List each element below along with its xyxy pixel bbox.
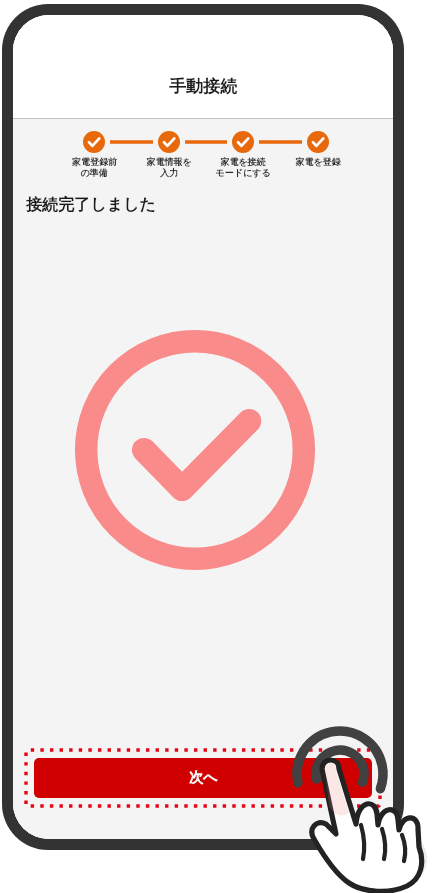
button[interactable]: 次へ [34,758,372,798]
staticText: 手動接続 [169,76,237,97]
staticText: 家電情報を [146,156,192,167]
staticText: 家電を接続 [220,156,266,167]
staticText: 入力 [160,167,178,178]
staticText: 家電登録前 [72,156,117,167]
staticText: の準備 [80,167,108,178]
staticText: 次へ [189,769,218,787]
other: Tap here [277,711,444,893]
staticText: モードにする [215,167,271,178]
staticText: 家電を登録 [295,156,341,167]
staticText: 接続完了しました [26,195,156,215]
